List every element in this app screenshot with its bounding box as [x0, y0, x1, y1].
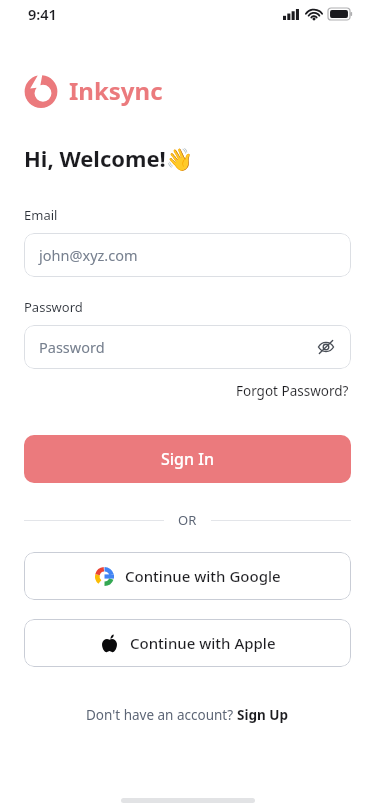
staticText: Don't have an account?	[86, 706, 237, 724]
button[interactable]: Sign In	[24, 435, 351, 483]
staticText: Forgot Password?	[236, 382, 349, 400]
button[interactable]: Password	[24, 325, 351, 369]
staticText: Sign In	[161, 448, 214, 470]
staticText: Sign Up	[237, 706, 289, 724]
button[interactable]: Don't have an account?	[0, 702, 375, 728]
staticText: Continue with Google	[125, 566, 281, 586]
staticText: Password	[39, 337, 315, 357]
staticText: Password	[24, 298, 83, 316]
button[interactable]: Continue with Apple	[24, 619, 351, 667]
button[interactable]: john@xyz.com	[24, 233, 351, 277]
staticText: john@xyz.com	[39, 245, 337, 265]
staticText: Inksync	[69, 74, 163, 107]
staticText: Continue with Apple	[130, 633, 276, 653]
staticText: Email	[24, 206, 58, 224]
staticText: OR	[178, 511, 197, 529]
staticText: 9:41	[28, 4, 57, 24]
button[interactable]: Continue with Google	[24, 552, 351, 600]
button[interactable]: Show password	[315, 336, 337, 358]
staticText: Hi, Welcome!👋	[24, 143, 194, 173]
button[interactable]: Forgot Password?	[234, 380, 351, 402]
